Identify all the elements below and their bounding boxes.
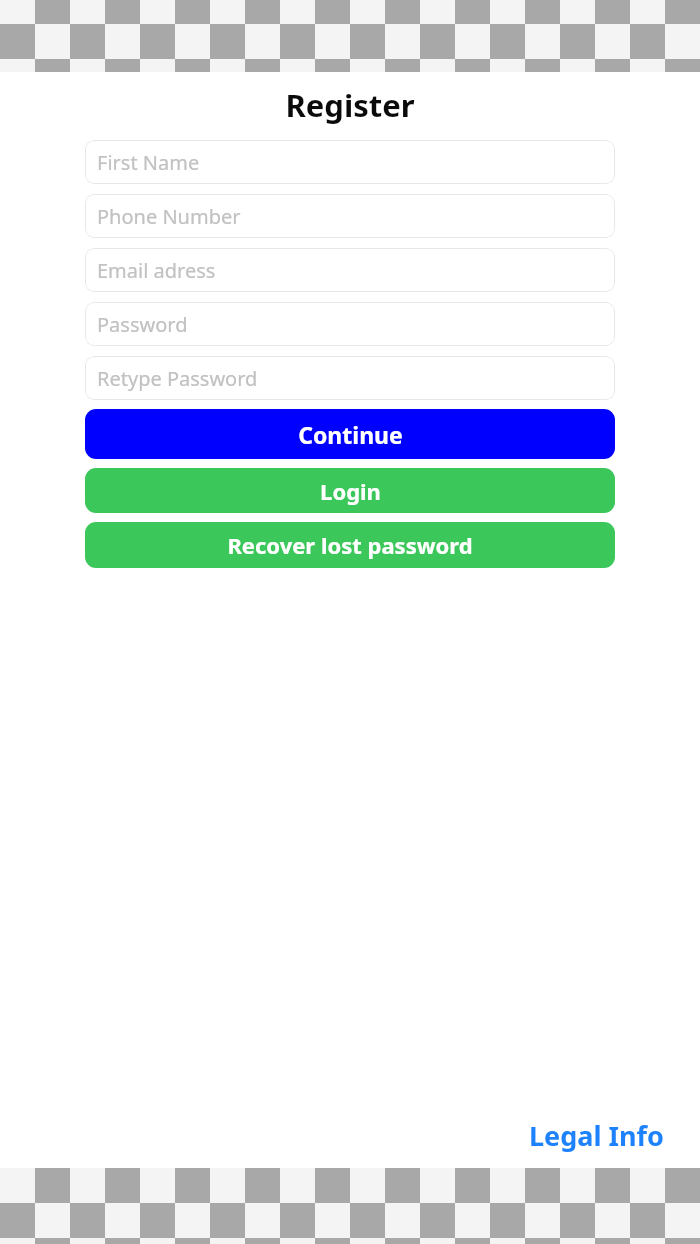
staticText: Email adress bbox=[97, 257, 216, 284]
staticText: Password bbox=[97, 311, 188, 338]
staticText: Legal Info bbox=[529, 1117, 664, 1154]
staticText: Retype Password bbox=[97, 365, 258, 392]
staticText: Recover lost password bbox=[227, 530, 473, 560]
button[interactable]: Email adress bbox=[85, 248, 615, 292]
button[interactable]: Continue bbox=[85, 409, 615, 459]
staticText: Phone Number bbox=[97, 203, 241, 230]
staticText: Register bbox=[285, 84, 415, 126]
button[interactable]: Recover lost password bbox=[85, 522, 615, 568]
button[interactable]: Legal Info bbox=[525, 1113, 668, 1158]
button[interactable]: Retype Password bbox=[85, 356, 615, 400]
button[interactable]: First Name bbox=[85, 140, 615, 184]
button[interactable]: Password bbox=[85, 302, 615, 346]
staticText: Continue bbox=[298, 419, 403, 450]
staticText: First Name bbox=[97, 149, 200, 176]
staticText: Login bbox=[320, 476, 381, 506]
button[interactable]: Phone Number bbox=[85, 194, 615, 238]
button[interactable]: Login bbox=[85, 468, 615, 513]
